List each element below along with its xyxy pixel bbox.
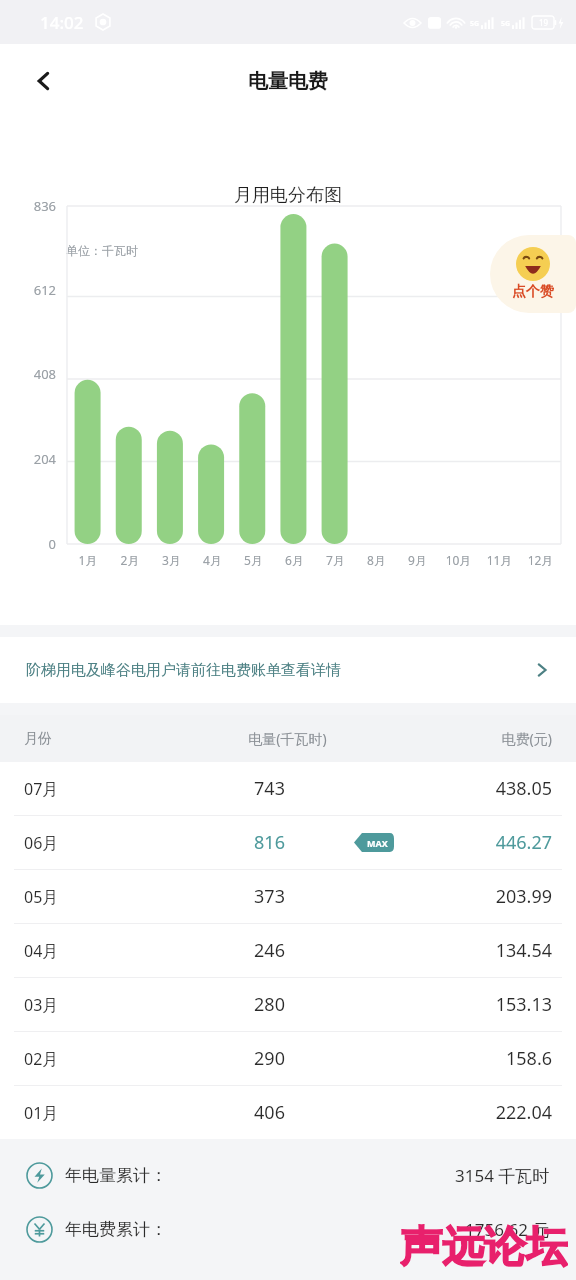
button[interactable]: 04月 <box>0 924 576 977</box>
staticText: 3月 <box>151 552 192 568</box>
staticText: 5G <box>501 19 511 29</box>
staticText: 153.13 <box>384 992 552 1017</box>
staticText: 612 <box>0 281 56 299</box>
staticText: 8月 <box>356 552 397 568</box>
staticText: 5月 <box>233 552 274 568</box>
button[interactable]: 点个赞 <box>490 235 576 313</box>
staticText: 07月 <box>24 778 191 800</box>
staticText: 02月 <box>24 1048 191 1070</box>
staticText: 373 <box>173 884 366 909</box>
staticText: 01月 <box>24 1102 191 1124</box>
staticText: 阶梯用电及峰谷电用户请前往电费账单查看详情 <box>26 661 534 680</box>
staticText: 7月 <box>315 552 356 568</box>
staticText: 3154 千瓦时 <box>455 1164 550 1187</box>
staticText: 203.99 <box>384 884 552 909</box>
staticText: 05月 <box>24 886 191 908</box>
staticText: 19 <box>539 17 549 28</box>
staticText: 年电量累计： <box>65 1165 167 1186</box>
staticText: 9月 <box>397 552 438 568</box>
staticText: 月份 <box>24 730 191 748</box>
staticText: 280 <box>173 992 366 1017</box>
staticText: 2月 <box>109 552 151 568</box>
staticText: 158.6 <box>384 1046 552 1071</box>
staticText: 电量电费 <box>248 69 328 94</box>
button[interactable]: 07月 <box>0 762 576 815</box>
staticText: 290 <box>173 1046 366 1071</box>
staticText: 03月 <box>24 994 191 1016</box>
staticText: 438.05 <box>384 776 552 801</box>
staticText: 5G <box>470 19 480 29</box>
staticText: 836 <box>0 197 56 215</box>
staticText: 4月 <box>192 552 233 568</box>
staticText: 0 <box>0 535 56 553</box>
button[interactable]: 05月 <box>0 870 576 923</box>
staticText: 222.04 <box>384 1100 552 1125</box>
button[interactable]: Back <box>22 59 66 103</box>
button[interactable]: 01月 <box>0 1086 576 1139</box>
staticText: 6月 <box>274 552 315 568</box>
staticText: 134.54 <box>384 938 552 963</box>
staticText: 04月 <box>24 940 191 962</box>
button[interactable]: 03月 <box>0 978 576 1031</box>
staticText: 年电费累计： <box>65 1219 167 1240</box>
staticText: MAX <box>367 837 388 849</box>
staticText: 204 <box>0 450 56 468</box>
staticText: 月用电分布图 <box>234 184 342 207</box>
button[interactable]: 阶梯用电及峰谷电用户请前往电费账单查看详情 <box>0 637 576 703</box>
staticText: 声远论坛 <box>400 1221 568 1273</box>
staticText: 1月 <box>67 552 109 568</box>
staticText: 1756.62 元 <box>465 1218 550 1241</box>
staticText: 单位：千瓦时 <box>66 243 138 258</box>
staticText: 12月 <box>520 552 561 568</box>
staticText: 816 <box>173 830 366 855</box>
staticText: 06月 <box>24 832 191 854</box>
staticText: 点个赞 <box>512 283 554 301</box>
staticText: 406 <box>173 1100 366 1125</box>
staticText: 246 <box>173 938 366 963</box>
button[interactable]: 02月 <box>0 1032 576 1085</box>
staticText: 743 <box>173 776 366 801</box>
button[interactable]: 06月 <box>0 816 576 869</box>
staticText: 10月 <box>438 552 479 568</box>
staticText: 408 <box>0 365 56 383</box>
staticText: 11月 <box>479 552 520 568</box>
staticText: 电量(千瓦时) <box>191 729 384 748</box>
staticText: 446.27 <box>384 830 552 855</box>
staticText: 电费(元) <box>384 729 552 748</box>
staticText: 14:02 <box>40 11 84 34</box>
